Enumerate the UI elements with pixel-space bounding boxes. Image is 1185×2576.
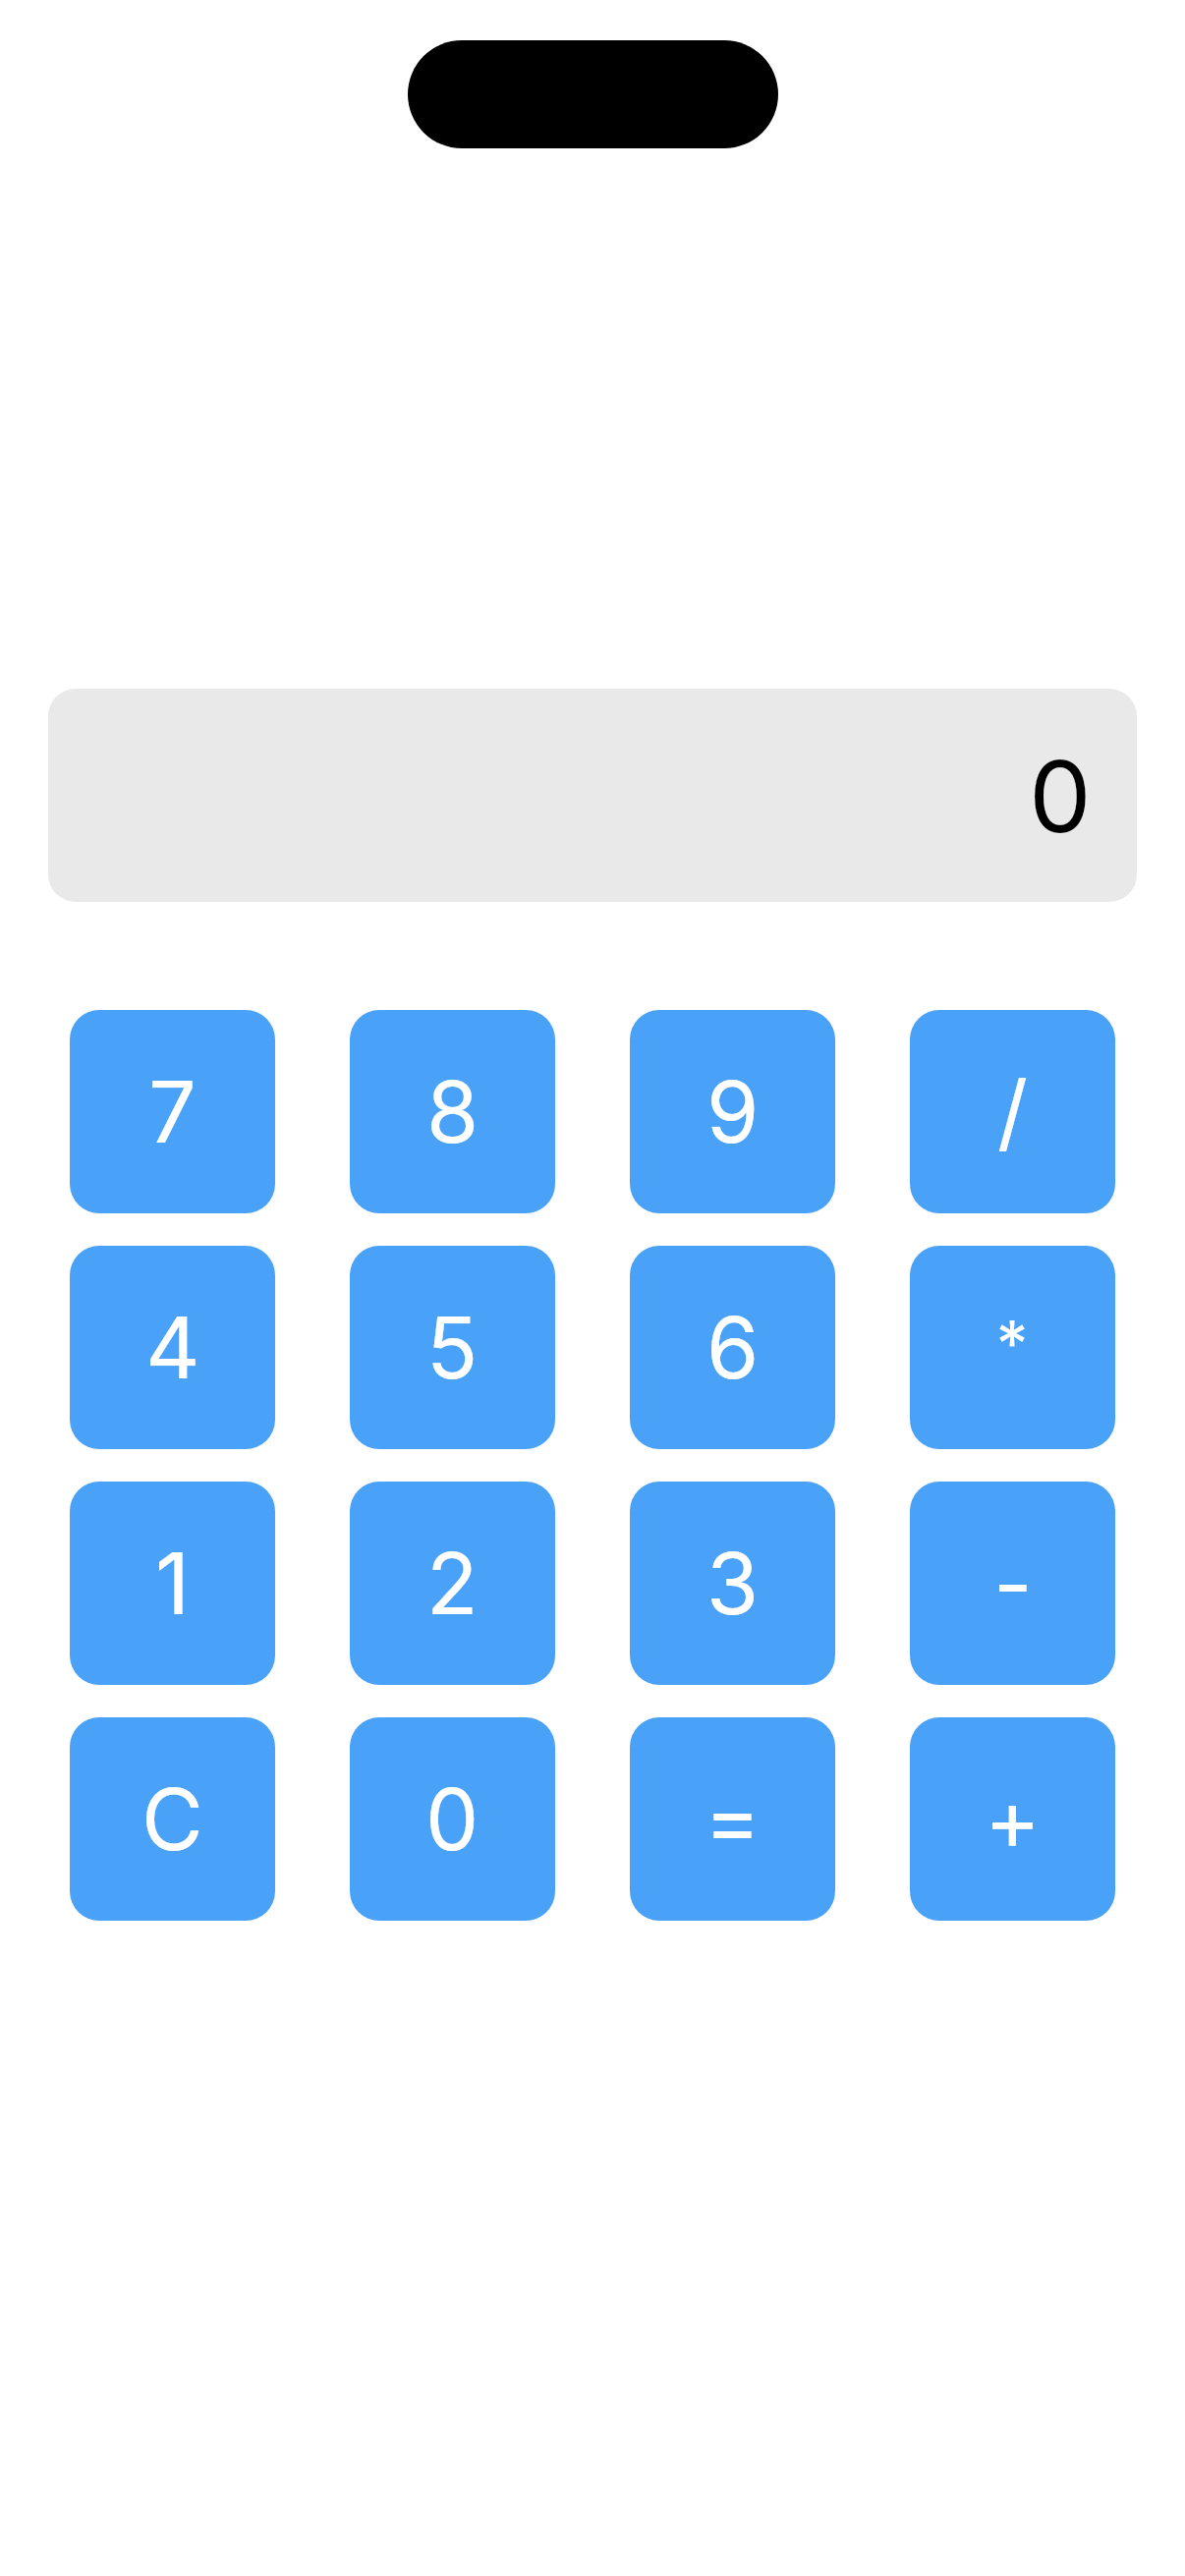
button[interactable]: + <box>910 1717 1115 1921</box>
staticText: * <box>996 1306 1029 1381</box>
button[interactable]: - <box>910 1482 1115 1685</box>
staticText: C <box>141 1768 203 1871</box>
staticText: 8 <box>426 1061 480 1163</box>
button[interactable]: 3 <box>630 1482 835 1685</box>
staticText: 0 <box>425 1768 480 1871</box>
staticText: 4 <box>145 1297 200 1399</box>
staticText: + <box>985 1768 1041 1871</box>
button[interactable]: C <box>70 1717 275 1921</box>
button[interactable]: = <box>630 1717 835 1921</box>
staticText: 6 <box>706 1297 760 1399</box>
staticText: 2 <box>426 1533 479 1635</box>
button[interactable]: * <box>910 1246 1115 1449</box>
button[interactable]: 4 <box>70 1246 275 1449</box>
staticText: 7 <box>148 1061 197 1163</box>
button[interactable]: 9 <box>630 1010 835 1213</box>
button[interactable]: 0 <box>350 1717 555 1921</box>
staticText: = <box>705 1768 761 1871</box>
button[interactable]: 7 <box>70 1010 275 1213</box>
button[interactable]: 5 <box>350 1246 555 1449</box>
staticText: 5 <box>426 1297 479 1399</box>
button[interactable]: 1 <box>70 1482 275 1685</box>
button[interactable]: 6 <box>630 1246 835 1449</box>
staticText: 9 <box>706 1061 760 1163</box>
staticText: 0 <box>1029 736 1092 856</box>
button[interactable]: 2 <box>350 1482 555 1685</box>
staticText: 3 <box>706 1533 760 1635</box>
button[interactable]: 8 <box>350 1010 555 1213</box>
button[interactable]: / <box>910 1010 1115 1213</box>
staticText: 1 <box>155 1533 190 1635</box>
staticText: - <box>993 1533 1033 1635</box>
staticText: / <box>997 1061 1028 1163</box>
